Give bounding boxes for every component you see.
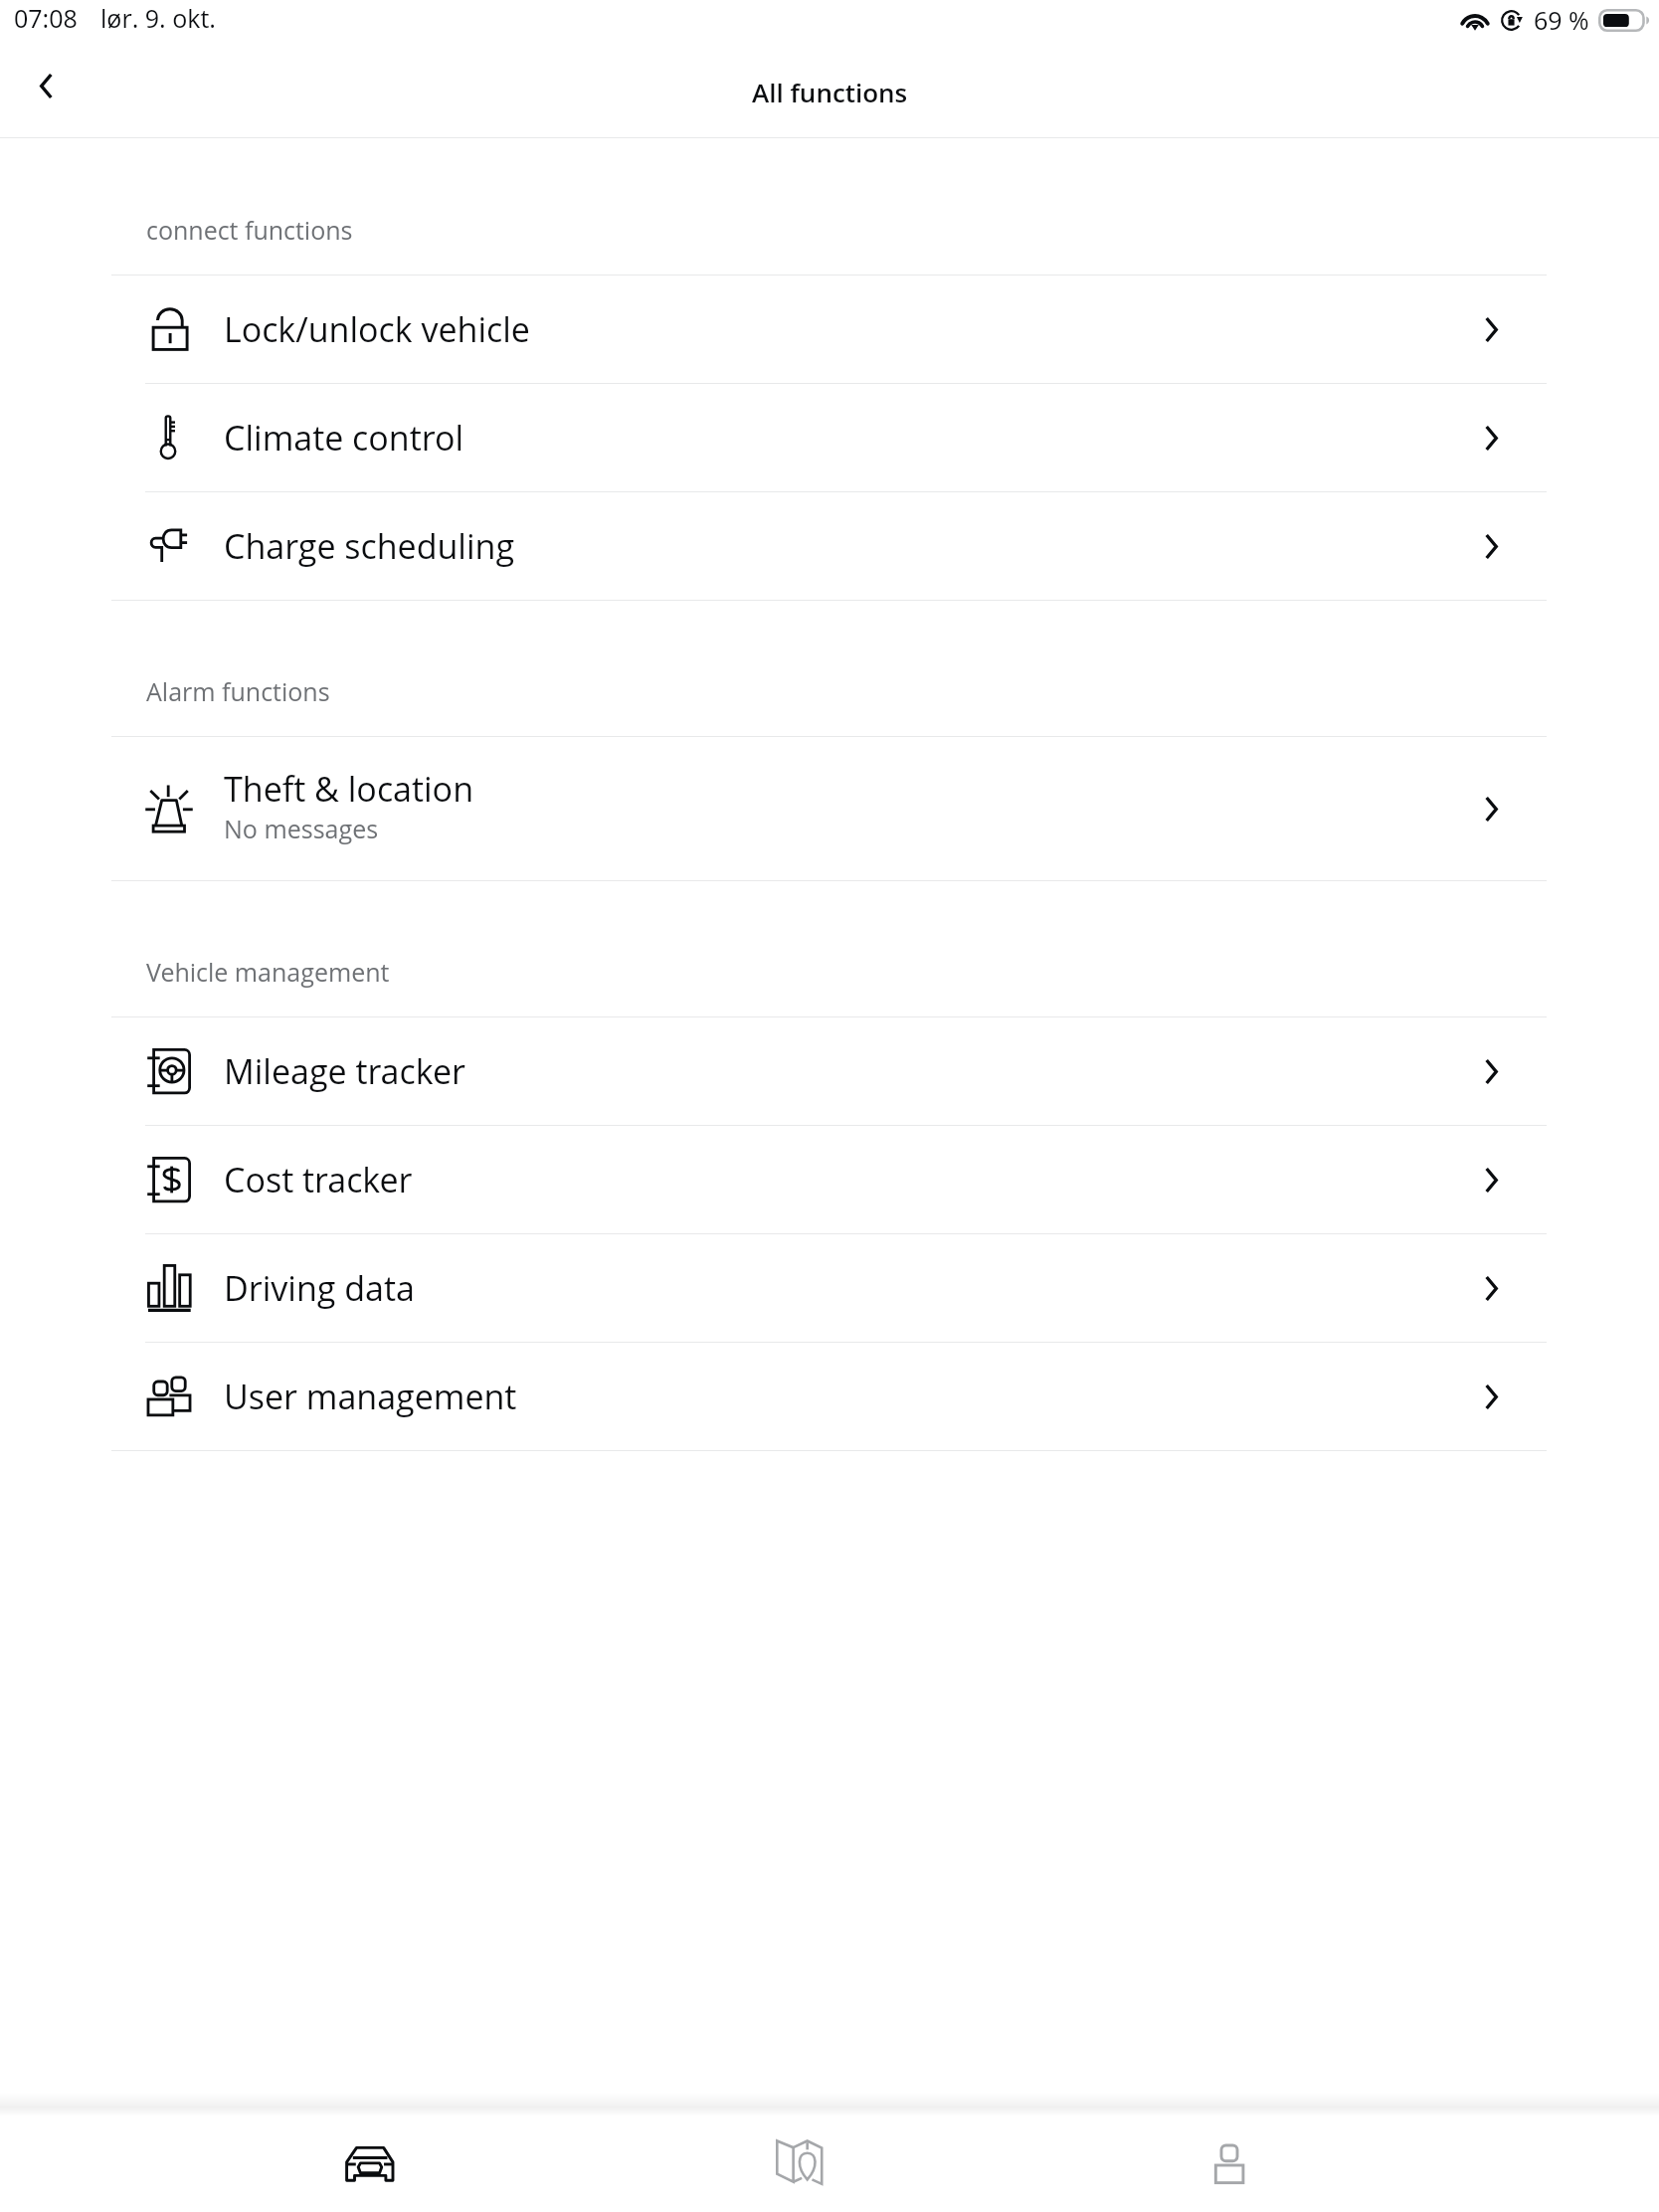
staticText: Driving data (224, 1265, 415, 1311)
staticText: User management (224, 1374, 517, 1419)
button[interactable]: Map (728, 2112, 871, 2212)
button[interactable]: Climate control (0, 384, 1659, 491)
staticText: connect functions (146, 213, 353, 247)
staticText: Vehicle management (146, 955, 390, 989)
button[interactable]: Driving data (0, 1234, 1659, 1342)
staticText: Lock/unlock vehicle (224, 306, 530, 352)
button[interactable]: Vehicle (298, 2112, 442, 2212)
staticText: Cost tracker (224, 1157, 413, 1202)
button[interactable]: Theft & location (0, 737, 1659, 880)
staticText: lør. 9. okt. (100, 1, 216, 35)
staticText: 07:08 (14, 1, 78, 35)
staticText: Alarm functions (146, 674, 330, 708)
staticText: 69 % (1534, 3, 1589, 37)
staticText: All functions (752, 75, 908, 109)
button[interactable]: Mileage tracker (0, 1017, 1659, 1125)
staticText: Theft & location (224, 766, 473, 812)
button[interactable]: User management (0, 1343, 1659, 1450)
button[interactable]: Back (16, 56, 77, 115)
staticText: Mileage tracker (224, 1048, 465, 1094)
staticText: Charge scheduling (224, 523, 515, 569)
staticText: Climate control (224, 415, 464, 461)
button[interactable]: Lock/unlock vehicle (0, 276, 1659, 383)
button[interactable]: Charge scheduling (0, 492, 1659, 600)
button[interactable]: Cost tracker (0, 1126, 1659, 1233)
staticText: No messages (224, 812, 379, 845)
button[interactable]: Profile (1158, 2112, 1301, 2212)
